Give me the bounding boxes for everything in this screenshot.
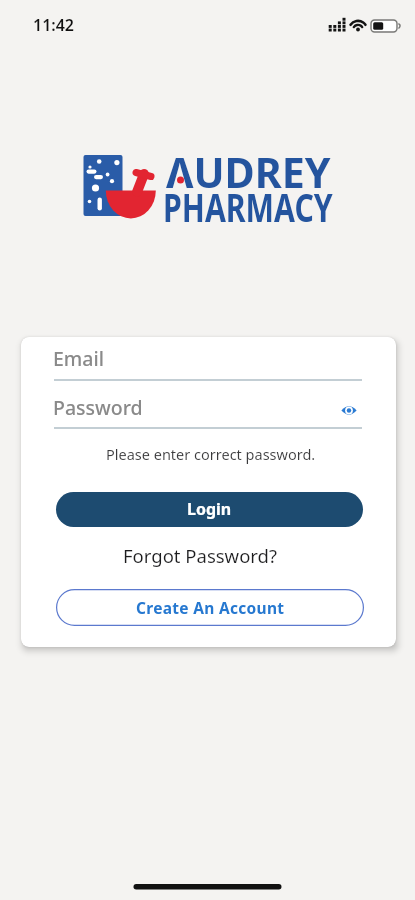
staticText: Login [187,498,232,520]
staticText: ΛUDREY [166,143,331,200]
staticText: Forgot Password? [123,543,278,568]
staticText: Password [53,394,143,421]
staticText: Email [53,345,105,372]
staticText: 11:42 [33,14,75,36]
staticText: Please enter correct password. [106,444,316,464]
staticText: PHARMACY [163,180,333,234]
staticText: Create An Account [136,597,285,618]
